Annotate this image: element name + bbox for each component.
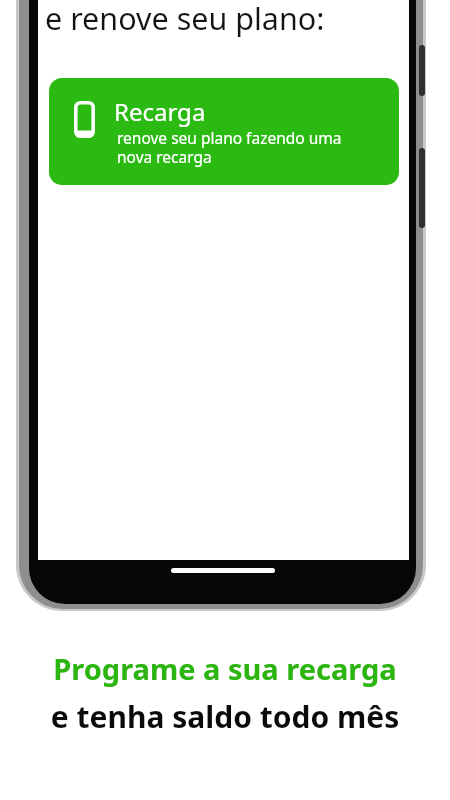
button[interactable]: Recarga <box>49 78 399 185</box>
staticText: e tenha saldo todo mês <box>0 696 450 737</box>
staticText: Programe a sua recarga <box>0 649 450 688</box>
staticText: renove seu plano fazendo uma nova recarg… <box>117 127 342 168</box>
staticText: Recarga <box>114 95 206 128</box>
staticText: e renove seu plano: <box>45 0 325 39</box>
